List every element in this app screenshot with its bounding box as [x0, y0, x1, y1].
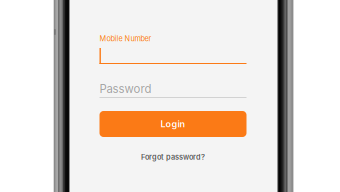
button[interactable]: Mobile Number: [99, 35, 246, 64]
staticText: Password: [99, 82, 151, 96]
button[interactable]: Password: [99, 84, 246, 98]
button[interactable]: Login: [99, 111, 246, 137]
staticText: Forgot password?: [141, 153, 205, 161]
button[interactable]: Forgot password?: [99, 153, 246, 161]
staticText: Login: [160, 118, 185, 129]
staticText: Mobile Number: [99, 34, 151, 43]
